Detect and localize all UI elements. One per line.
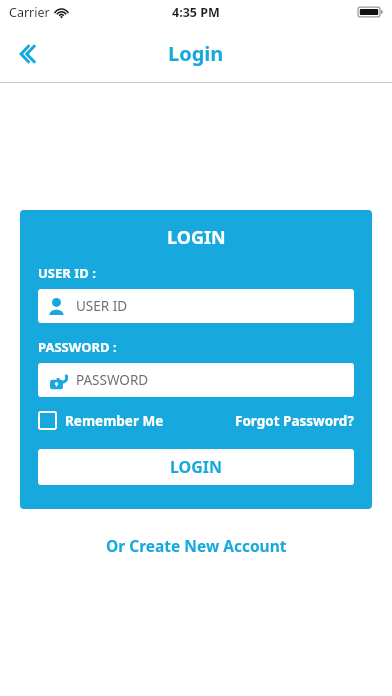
button[interactable]: Back	[8, 30, 56, 78]
staticText: 4:35 PM	[172, 4, 220, 21]
button[interactable]: PASSWORD	[38, 363, 354, 397]
staticText: Or Create New Account	[106, 535, 287, 556]
staticText: PASSWORD	[76, 371, 149, 389]
staticText: USER ID :	[38, 264, 96, 282]
staticText: LOGIN	[170, 456, 223, 478]
button[interactable]: LOGIN	[38, 449, 354, 485]
staticText: Remember Me	[65, 412, 164, 430]
staticText: USER ID	[76, 297, 128, 315]
staticText: Login	[168, 40, 224, 67]
button[interactable]: Remember Me	[38, 411, 164, 430]
button[interactable]: Or Create New Account	[0, 535, 392, 556]
staticText: Carrier	[9, 4, 50, 21]
staticText: PASSWORD :	[38, 338, 117, 356]
staticText: Forgot Password?	[235, 412, 354, 430]
button[interactable]: Forgot Password?	[235, 412, 354, 430]
button[interactable]: USER ID	[38, 289, 354, 323]
staticText: LOGIN	[167, 225, 226, 250]
